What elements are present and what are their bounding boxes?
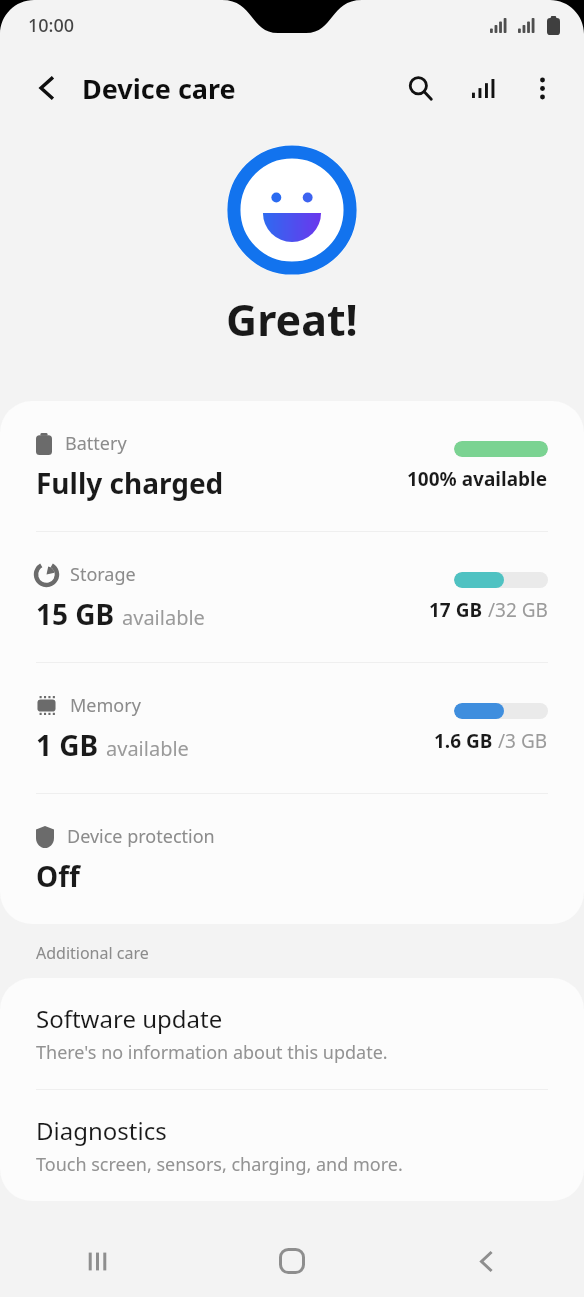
staticText: /3 GB — [498, 728, 548, 754]
staticText: Diagnostics — [36, 1114, 167, 1147]
staticText: 1 GB — [36, 726, 99, 764]
staticText: Great! — [226, 290, 358, 349]
button[interactable]: Recents — [0, 1225, 194, 1297]
staticText: 100% available — [407, 466, 548, 492]
staticText: available — [106, 735, 189, 762]
button[interactable]: Battery — [0, 401, 584, 531]
staticText: Device care — [82, 70, 236, 107]
button[interactable]: Diagnostics — [0, 1090, 584, 1201]
staticText: 15 GB — [36, 595, 115, 633]
staticText: Memory — [70, 693, 141, 718]
staticText: Off — [36, 857, 80, 895]
button[interactable]: Home — [194, 1225, 389, 1297]
staticText: Battery — [65, 431, 127, 456]
button[interactable]: Storage — [0, 532, 584, 662]
button[interactable]: More options — [516, 62, 568, 114]
button[interactable]: Memory — [0, 663, 584, 793]
staticText: 1.6 GB — [434, 728, 498, 754]
staticText: There's no information about this update… — [36, 1040, 388, 1065]
staticText: available — [122, 604, 205, 631]
button[interactable]: Device protection — [0, 794, 584, 924]
staticText: Software update — [36, 1002, 223, 1035]
staticText: 17 GB — [429, 597, 488, 623]
staticText: 10:00 — [28, 13, 75, 38]
staticText: Fully charged — [36, 464, 224, 502]
button[interactable]: Software update — [0, 978, 584, 1089]
staticText: Additional care — [36, 942, 149, 964]
staticText: Storage — [70, 562, 136, 587]
button[interactable]: Search — [394, 62, 446, 114]
button[interactable]: Usage statistics — [456, 62, 508, 114]
staticText: Device protection — [67, 824, 215, 849]
staticText: Touch screen, sensors, charging, and mor… — [36, 1152, 403, 1177]
button[interactable]: Back — [389, 1225, 584, 1297]
staticText: /32 GB — [488, 597, 548, 623]
button[interactable]: Back — [20, 61, 74, 115]
